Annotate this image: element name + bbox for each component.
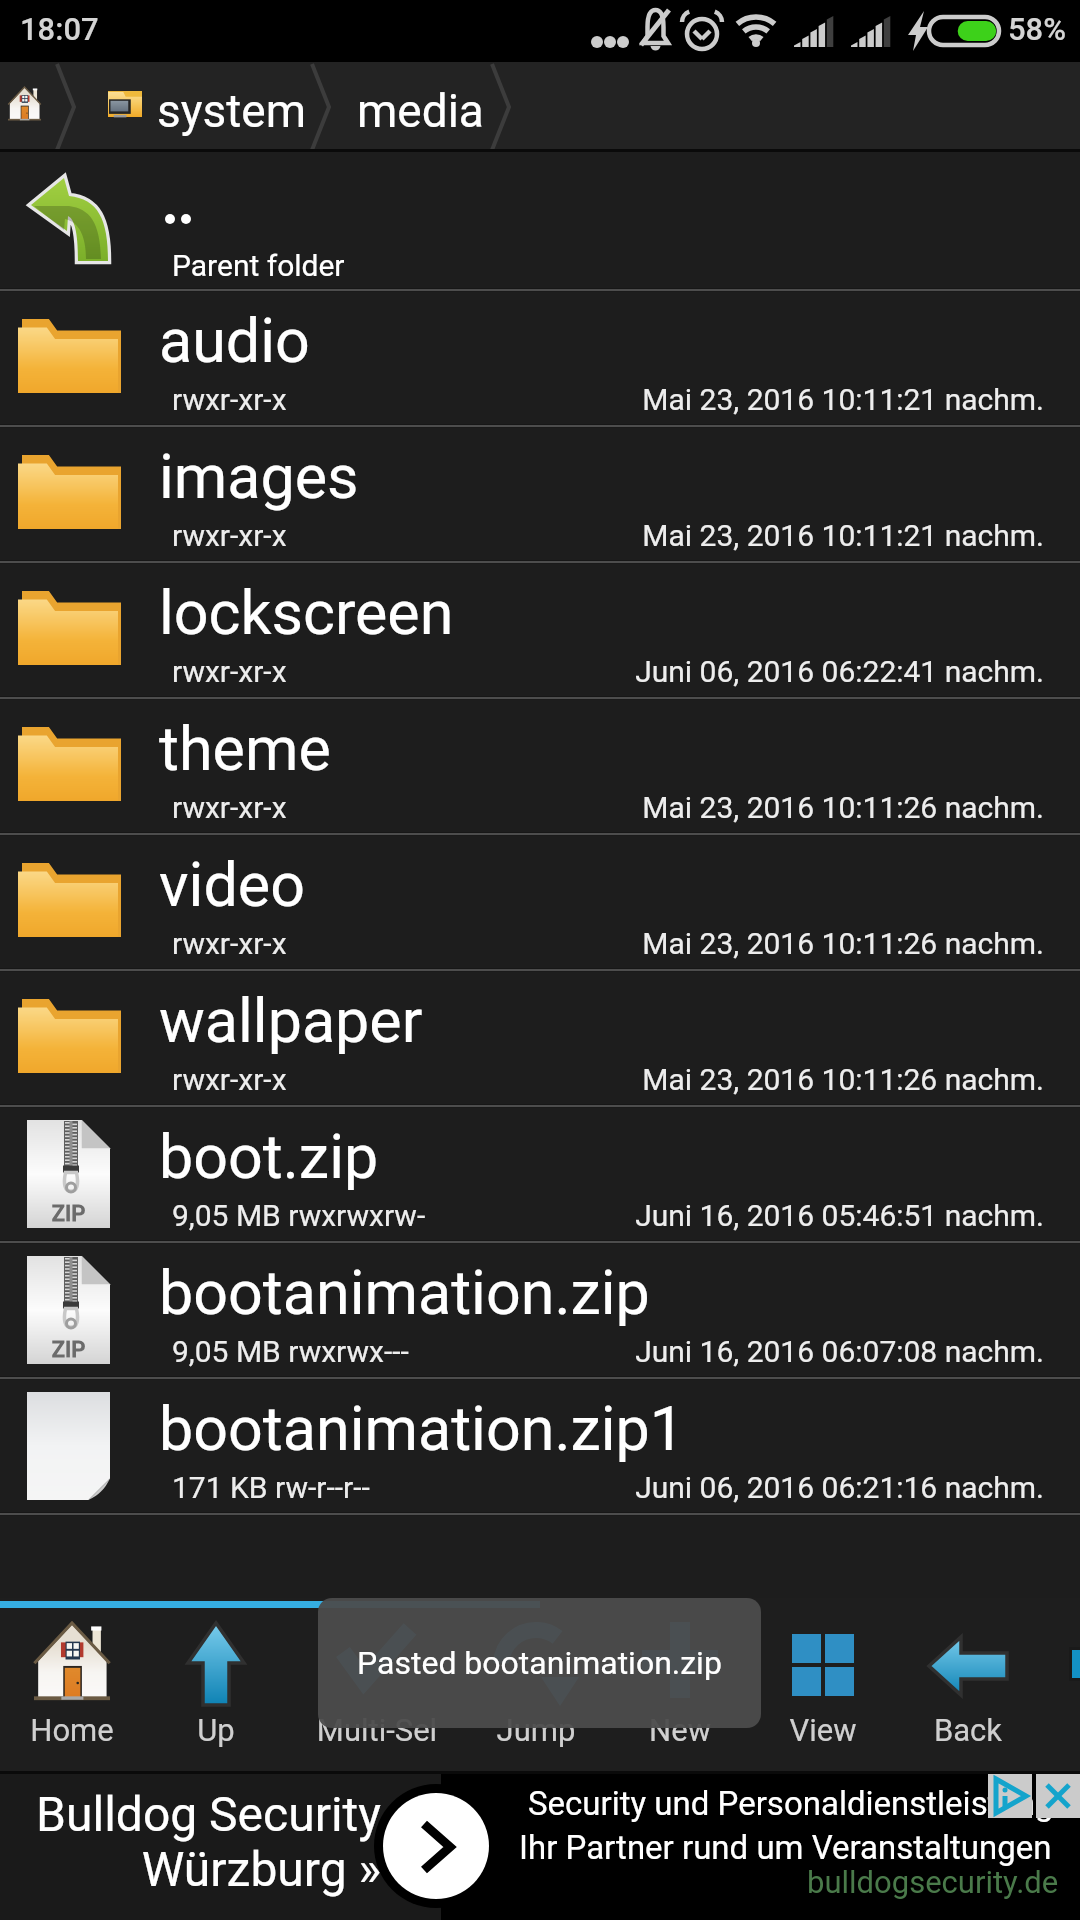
- staticText: Parent folder: [172, 248, 345, 283]
- staticText: wallpaper: [159, 985, 423, 1056]
- staticText: 18:07: [20, 11, 99, 47]
- button[interactable]: Pasted bootanimation.zip: [318, 1598, 761, 1728]
- button[interactable]: Jump: [462, 1608, 610, 1774]
- button[interactable]: Back: [894, 1608, 1042, 1774]
- button[interactable]: Home folder: [0, 62, 56, 152]
- staticText: lockscreen: [159, 577, 454, 648]
- staticText: Juni 16, 2016 06:07:08 nachm.: [0, 1334, 1044, 1369]
- staticText: Jump: [462, 1712, 610, 1748]
- button[interactable]: View: [749, 1608, 897, 1774]
- staticText: Up: [142, 1712, 290, 1748]
- button[interactable]: Ad info: [988, 1774, 1032, 1818]
- staticText: Juni 16, 2016 05:46:51 nachm.: [0, 1198, 1044, 1233]
- staticText: Juni 06, 2016 06:22:41 nachm.: [0, 654, 1044, 689]
- button[interactable]: Close ad: [1036, 1774, 1080, 1818]
- staticText: Juni 06, 2016 06:21:16 nachm.: [0, 1470, 1044, 1505]
- button[interactable]: video: [0, 834, 1080, 970]
- button[interactable]: bootanimation.zip1: [0, 1378, 1080, 1514]
- staticText: rwxr-xr-x: [172, 654, 287, 689]
- staticText: Multi-Sel: [303, 1712, 451, 1748]
- staticText: Ihr Partner rund um Veranstaltungen: [519, 1828, 1052, 1867]
- button[interactable]: theme: [0, 698, 1080, 834]
- button[interactable]: Up: [142, 1608, 290, 1774]
- button[interactable]: Multi-Sel: [303, 1608, 451, 1774]
- staticText: Mai 23, 2016 10:11:26 nachm.: [0, 926, 1044, 961]
- staticText: ZIP: [27, 1201, 110, 1227]
- button[interactable]: system: [157, 84, 307, 138]
- staticText: Security und Personaldienstleistung: [528, 1784, 1054, 1823]
- button[interactable]: Parent folder: [0, 152, 1080, 290]
- button[interactable]: New: [606, 1608, 754, 1774]
- staticText: ZIP: [27, 1337, 110, 1363]
- staticText: rwxr-xr-x: [172, 1062, 287, 1097]
- button[interactable]: media: [357, 84, 484, 138]
- staticText: Mai 23, 2016 10:11:26 nachm.: [0, 1062, 1044, 1097]
- staticText: New: [606, 1712, 754, 1748]
- button[interactable]: ZIP: [0, 1242, 1080, 1378]
- staticText: Mai 23, 2016 10:11:26 nachm.: [0, 790, 1044, 825]
- button[interactable]: audio: [0, 290, 1080, 426]
- staticText: bootanimation.zip: [159, 1257, 650, 1328]
- staticText: audio: [159, 305, 310, 376]
- staticText: video: [159, 849, 305, 920]
- staticText: 9,05 MB rwxrwxrw-: [172, 1198, 426, 1233]
- staticText: bulldogsecurity.de: [807, 1864, 1059, 1900]
- button[interactable]: More: [1032, 1608, 1080, 1774]
- button[interactable]: images: [0, 426, 1080, 562]
- staticText: rwxr-xr-x: [172, 790, 287, 825]
- button[interactable]: wallpaper: [0, 970, 1080, 1106]
- staticText: boot.zip: [159, 1121, 379, 1192]
- staticText: Home: [0, 1712, 146, 1748]
- staticText: Pasted bootanimation.zip: [357, 1644, 722, 1682]
- button[interactable]: Home: [0, 1608, 146, 1774]
- staticText: theme: [159, 713, 331, 784]
- staticText: images: [159, 441, 359, 512]
- staticText: View: [749, 1712, 897, 1748]
- staticText: rwxr-xr-x: [172, 518, 287, 553]
- staticText: 58%: [1008, 11, 1067, 47]
- staticText: rwxr-xr-x: [172, 382, 287, 417]
- staticText: bootanimation.zip1: [159, 1393, 685, 1464]
- staticText: Mai 23, 2016 10:11:21 nachm.: [0, 382, 1044, 417]
- staticText: 9,05 MB rwxrwx---: [172, 1334, 409, 1369]
- button[interactable]: lockscreen: [0, 562, 1080, 698]
- staticText: 171 KB rw-r--r--: [172, 1470, 370, 1505]
- staticText: Bulldog Security: [0, 1786, 381, 1842]
- staticText: rwxr-xr-x: [172, 926, 287, 961]
- staticText: Würzburg »: [0, 1841, 381, 1897]
- button[interactable]: ZIP: [0, 1106, 1080, 1242]
- staticText: Back: [894, 1712, 1042, 1748]
- staticText: Mai 23, 2016 10:11:21 nachm.: [0, 518, 1044, 553]
